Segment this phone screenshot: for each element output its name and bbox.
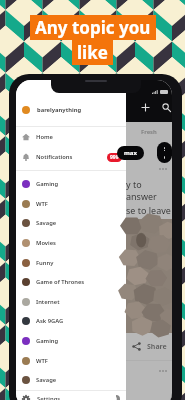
staticText: 999 (110, 154, 119, 161)
button[interactable]: Add post (141, 103, 150, 112)
button[interactable]: Settings (16, 391, 126, 400)
staticText: Savage (36, 376, 57, 384)
staticText: max (124, 149, 137, 157)
button[interactable]: Savage (16, 213, 126, 233)
staticText: Movies (36, 239, 56, 247)
button[interactable]: Gaming (16, 331, 126, 351)
staticText: Ask 9GAG (36, 317, 64, 325)
button[interactable]: Notifications (16, 147, 126, 167)
staticText: Gaming (36, 180, 59, 188)
button[interactable]: max (117, 146, 144, 160)
staticText: Settings (37, 395, 61, 400)
staticText: Share (147, 342, 167, 352)
staticText: se to leave (126, 204, 171, 216)
staticText: barelyanything (37, 106, 82, 114)
staticText: Home (36, 133, 53, 141)
button[interactable]: Savage (16, 370, 126, 390)
button[interactable]: Ask 9GAG (16, 311, 126, 331)
button[interactable]: Funny (16, 253, 126, 272)
staticText: Funny (36, 259, 54, 267)
button[interactable]: More options (156, 165, 170, 173)
button[interactable]: More options (156, 367, 170, 375)
staticText: WTF (36, 200, 48, 208)
button[interactable]: Internet (16, 292, 126, 311)
staticText: WTF (36, 357, 48, 365)
staticText: Gaming (36, 337, 59, 345)
staticText: School (164, 145, 165, 160)
button[interactable]: Movies (16, 233, 126, 253)
staticText: like (77, 41, 108, 64)
staticText: Notifications (36, 153, 73, 161)
staticText: Internet (36, 298, 60, 306)
button[interactable]: WTF (16, 351, 126, 370)
button[interactable]: Share (126, 333, 172, 360)
staticText: Savage (36, 219, 57, 227)
button[interactable]: WTF (16, 194, 126, 213)
button[interactable]: Game of Thrones (16, 272, 126, 292)
button[interactable]: Search (162, 103, 171, 112)
button[interactable]: Dark mode (112, 395, 120, 400)
staticText: y to answer (126, 178, 172, 202)
button[interactable]: Home (16, 127, 126, 147)
button[interactable]: Gaming (16, 174, 126, 194)
button[interactable]: School (157, 142, 172, 163)
staticText: Any topic you (35, 16, 151, 39)
staticText: Game of Thrones (36, 278, 85, 286)
button[interactable]: barelyanything (16, 100, 126, 120)
staticText: Fresh (141, 128, 157, 136)
